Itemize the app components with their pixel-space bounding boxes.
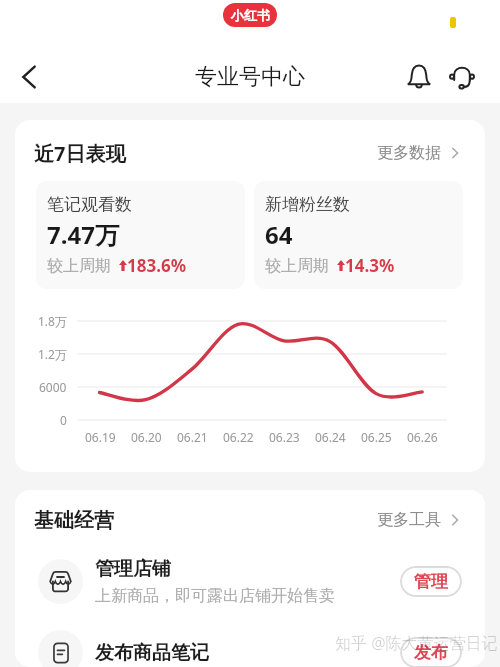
staticText: 06.25 — [361, 429, 392, 445]
staticText: 06.22 — [223, 429, 254, 445]
staticText: 笔记观看数 — [47, 194, 132, 215]
staticText: 更多工具 — [377, 510, 441, 530]
staticText: 1.2万 — [38, 346, 67, 362]
button[interactable]: 新增粉丝数 — [254, 181, 463, 289]
staticText: 06.24 — [315, 429, 346, 445]
staticText: 06.21 — [177, 429, 208, 445]
staticText: 上新商品，即可露出店铺开始售卖 — [95, 586, 335, 606]
staticText: 知乎 @陈大黄运营日记 — [335, 632, 498, 654]
staticText: 64 — [265, 218, 293, 251]
button[interactable]: 发布 — [400, 637, 462, 667]
button[interactable]: 管理店铺 — [15, 546, 485, 617]
staticText: 7.47万 — [47, 218, 119, 251]
staticText: 较上周期 — [47, 256, 111, 276]
staticText: 基础经营 — [34, 508, 114, 533]
staticText: 较上周期 — [265, 256, 329, 276]
staticText: 近7日表现 — [34, 140, 126, 167]
button[interactable]: Back — [7, 55, 51, 99]
staticText: 06.23 — [269, 429, 300, 445]
staticText: 发布商品笔记 — [95, 641, 209, 665]
button[interactable]: Customer service — [440, 55, 484, 99]
button[interactable]: 管理 — [400, 566, 462, 597]
staticText: 14.3% — [345, 254, 395, 277]
staticText: 新增粉丝数 — [265, 194, 350, 215]
staticText: 发布 — [414, 642, 448, 663]
staticText: 06.26 — [407, 429, 438, 445]
button[interactable]: 笔记观看数 — [36, 181, 245, 289]
staticText: 06.19 — [85, 429, 116, 445]
staticText: 06.20 — [131, 429, 162, 445]
staticText: 专业号中心 — [195, 63, 305, 91]
button[interactable]: 发布商品笔记 — [15, 617, 485, 667]
staticText: 管理店铺 — [95, 557, 171, 581]
button[interactable]: 更多数据 — [369, 135, 470, 171]
staticText: 0 — [60, 412, 67, 428]
staticText: 183.6% — [127, 254, 187, 277]
staticText: 管理 — [414, 571, 448, 592]
button[interactable]: Notifications — [397, 55, 441, 99]
staticText: 小红书 — [231, 7, 270, 23]
staticText: 1.8万 — [38, 313, 67, 329]
button[interactable]: 更多工具 — [369, 502, 470, 538]
staticText: 6000 — [39, 379, 67, 395]
staticText: 更多数据 — [377, 143, 441, 163]
